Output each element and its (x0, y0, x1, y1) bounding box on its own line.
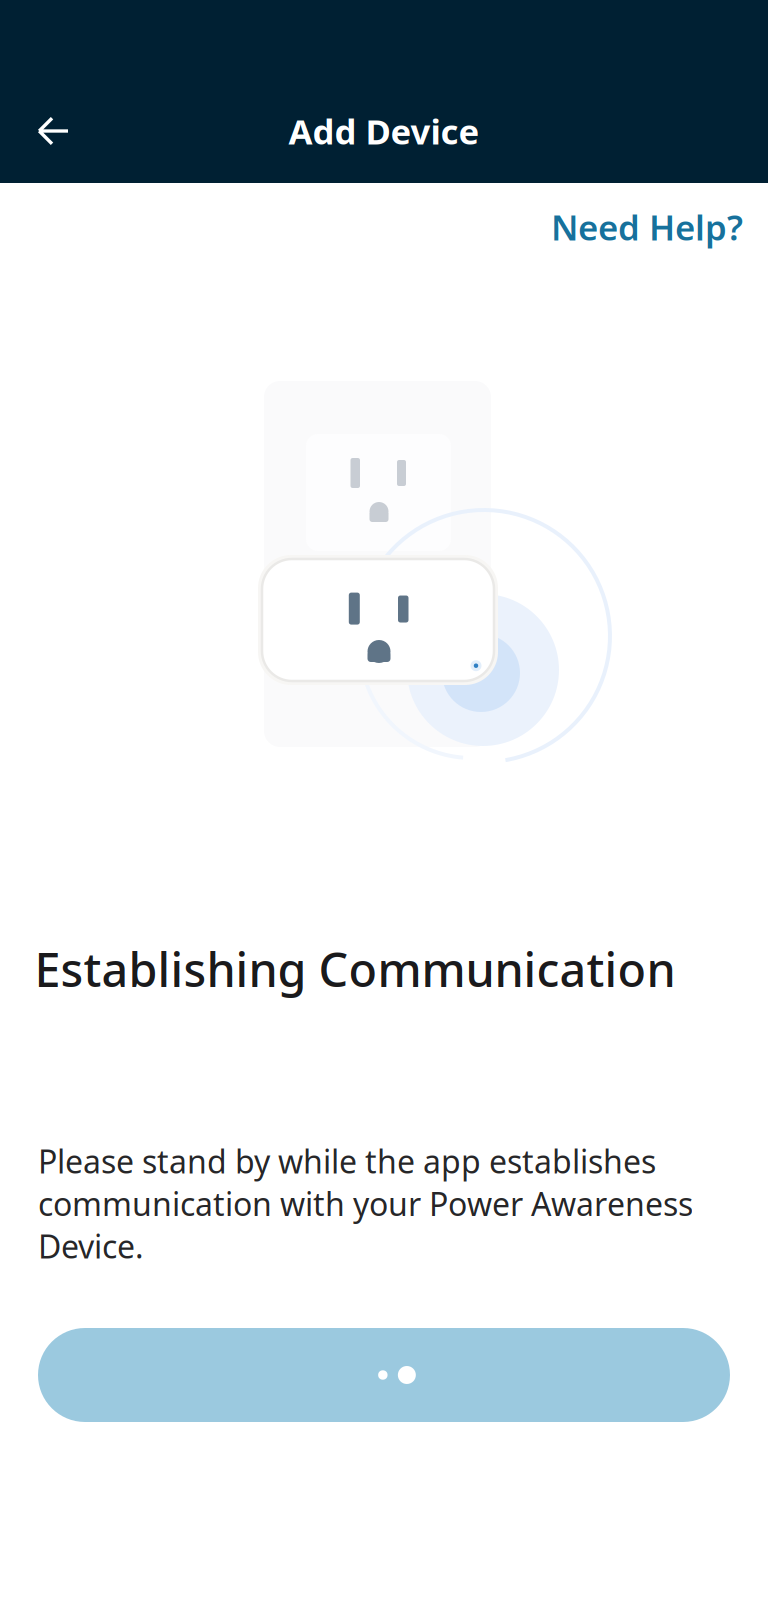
staticText: Establishing Communication (34, 938, 675, 1000)
staticText: Please stand by while the app establishe… (38, 1140, 693, 1267)
button[interactable] (38, 1328, 730, 1422)
staticText: Need Help? (551, 204, 743, 250)
button[interactable]: Back (0, 102, 92, 160)
staticText: Add Device (288, 108, 479, 154)
button[interactable]: Need Help? (537, 192, 757, 262)
